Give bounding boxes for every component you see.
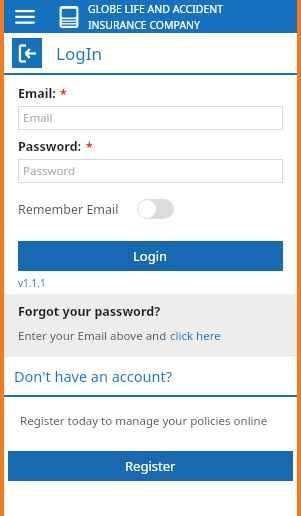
button[interactable]: Login (18, 241, 283, 271)
staticText: Password: (18, 138, 82, 155)
button[interactable]: Remember Email toggle (137, 199, 174, 219)
button[interactable]: Email (18, 106, 283, 130)
staticText: Enter your Email above and (18, 328, 170, 344)
staticText: Register today to manage your policies o… (20, 413, 268, 429)
staticText: Login (133, 247, 168, 265)
staticText: Register (125, 457, 176, 475)
staticText: v1.1.1 (18, 276, 46, 290)
staticText: Don't have an account? (14, 366, 172, 386)
staticText: Password (23, 163, 76, 179)
button[interactable]: Enter your Email above and (18, 328, 221, 344)
button[interactable]: Remember Email (18, 199, 283, 219)
staticText: INSURANCE COMPANY (88, 18, 201, 32)
button[interactable]: Register (8, 451, 293, 481)
button[interactable]: Password (18, 159, 283, 183)
staticText: Remember Email (18, 201, 119, 218)
staticText: * (60, 86, 67, 102)
staticText: click here (170, 328, 221, 344)
staticText: LogIn (56, 42, 102, 65)
staticText: Email (23, 110, 53, 126)
button[interactable]: Menu (10, 2, 40, 32)
button[interactable]: LogIn (4, 33, 297, 73)
staticText: * (86, 139, 93, 155)
staticText: Email: (18, 85, 56, 102)
staticText: GLOBE LIFE AND ACCIDENT (88, 2, 224, 16)
button[interactable]: Don't have an account? (4, 366, 297, 386)
staticText: Forgot your password? (18, 303, 161, 320)
